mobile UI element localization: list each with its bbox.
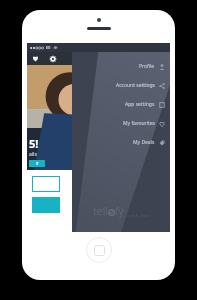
staticText: EE bbox=[46, 45, 51, 50]
button[interactable]: T bbox=[29, 160, 45, 167]
staticText: My favourites bbox=[123, 120, 155, 127]
staticText: ails bbox=[29, 151, 37, 158]
button[interactable]: My favourites bbox=[72, 114, 165, 133]
staticText: 5! bbox=[29, 136, 39, 151]
staticText: fy bbox=[115, 203, 124, 218]
button[interactable]: My Deals bbox=[72, 133, 165, 152]
staticText: rate & share bbox=[127, 213, 150, 218]
button[interactable]: Account settings bbox=[72, 76, 165, 95]
staticText: T bbox=[36, 161, 39, 166]
button[interactable] bbox=[32, 176, 60, 192]
button[interactable]: App settings bbox=[72, 95, 165, 114]
staticText: tell bbox=[93, 203, 108, 218]
button[interactable]: Favourites bbox=[30, 53, 41, 64]
button[interactable]: Settings bbox=[47, 53, 58, 64]
staticText: App settings bbox=[125, 101, 155, 108]
staticText: My Deals bbox=[133, 139, 155, 146]
staticText: Account settings bbox=[116, 82, 155, 89]
staticText: Profile bbox=[139, 63, 155, 70]
button[interactable]: Profile bbox=[72, 57, 165, 76]
